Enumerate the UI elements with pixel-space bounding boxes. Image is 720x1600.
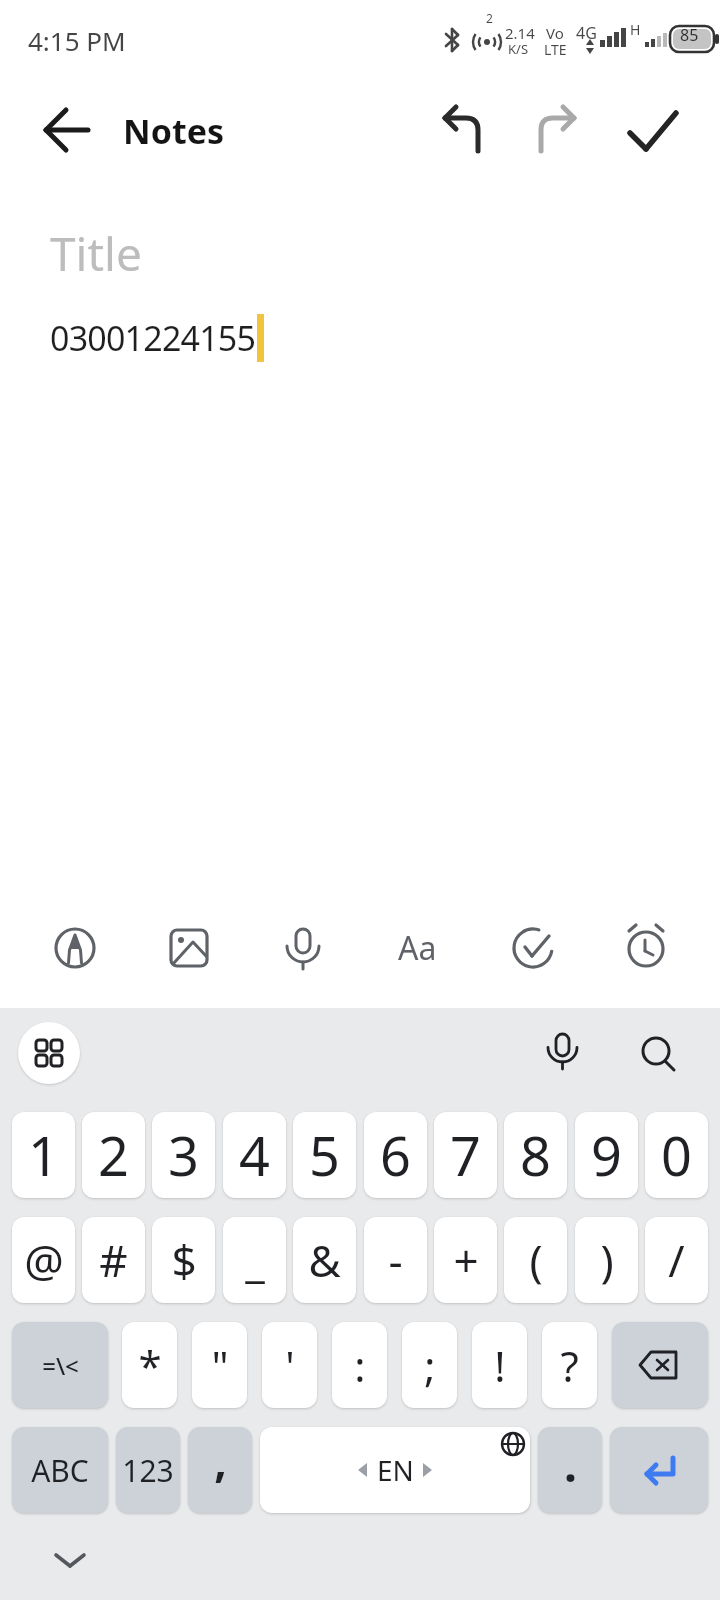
button[interactable]: # — [82, 1217, 145, 1303]
staticText: * — [138, 1337, 162, 1394]
button[interactable] — [612, 1322, 708, 1408]
staticText: EN — [377, 1451, 414, 1489]
staticText: 1 — [28, 1118, 59, 1192]
button[interactable] — [169, 928, 209, 968]
button[interactable]: * — [122, 1322, 177, 1408]
button[interactable]: 2 — [82, 1112, 145, 1198]
staticText: , — [214, 1430, 227, 1490]
button[interactable] — [52, 1548, 88, 1574]
staticText: + — [453, 1230, 479, 1290]
button[interactable]: 4 — [223, 1112, 286, 1198]
button[interactable]: 123 — [116, 1427, 180, 1513]
button[interactable] — [511, 926, 555, 970]
staticText: - — [388, 1230, 403, 1290]
button[interactable]: 5 — [293, 1112, 356, 1198]
staticText: 3 — [168, 1118, 199, 1192]
button[interactable]: ' — [262, 1322, 317, 1408]
button[interactable]: 0 — [645, 1112, 708, 1198]
button[interactable]: EN — [260, 1427, 530, 1513]
staticText: _ — [245, 1230, 265, 1290]
button[interactable]: & — [293, 1217, 356, 1303]
button[interactable]: 9 — [575, 1112, 638, 1198]
button[interactable] — [283, 926, 323, 972]
button[interactable] — [610, 1427, 708, 1513]
button[interactable] — [533, 103, 581, 155]
button[interactable]: - — [364, 1217, 427, 1303]
staticText: K/S — [508, 40, 529, 58]
staticText: 0 — [661, 1118, 692, 1192]
button[interactable] — [544, 1032, 582, 1076]
button[interactable]: Aa — [392, 926, 442, 970]
button[interactable]: / — [645, 1217, 708, 1303]
button[interactable] — [438, 103, 486, 155]
staticText: ( — [529, 1230, 543, 1290]
staticText: & — [308, 1230, 341, 1290]
button[interactable] — [53, 926, 97, 970]
button[interactable] — [626, 108, 680, 154]
staticText: 2 — [486, 10, 493, 26]
button[interactable]: 3 — [152, 1112, 215, 1198]
button[interactable] — [18, 1022, 80, 1084]
staticText: Aa — [398, 926, 437, 970]
staticText: ABC — [31, 1450, 89, 1491]
staticText: =\< — [42, 1349, 79, 1382]
staticText: 2.14 — [505, 23, 535, 43]
staticText: 5 — [309, 1118, 340, 1192]
staticText: ) — [600, 1230, 614, 1290]
staticText: ' — [285, 1337, 295, 1394]
button[interactable]: @ — [12, 1217, 75, 1303]
button[interactable]: : — [332, 1322, 387, 1408]
button[interactable]: ; — [402, 1322, 457, 1408]
button[interactable]: $ — [152, 1217, 215, 1303]
staticText: 8 — [520, 1118, 551, 1192]
staticText: ? — [560, 1337, 579, 1394]
staticText: H — [630, 20, 641, 39]
button[interactable]: , — [188, 1427, 252, 1513]
button[interactable]: 6 — [364, 1112, 427, 1198]
staticText: 4 — [239, 1118, 270, 1192]
staticText: 85 — [680, 24, 699, 46]
button[interactable]: 7 — [434, 1112, 497, 1198]
button[interactable]: ABC — [12, 1427, 108, 1513]
staticText: 9 — [591, 1118, 622, 1192]
button[interactable]: . — [538, 1427, 602, 1513]
staticText: " — [211, 1337, 229, 1394]
staticText: 2 — [98, 1118, 129, 1192]
staticText: 6 — [380, 1118, 411, 1192]
button[interactable] — [40, 106, 92, 154]
button[interactable]: 1 — [12, 1112, 75, 1198]
button[interactable]: " — [192, 1322, 247, 1408]
staticText: Notes — [123, 108, 225, 154]
button[interactable]: _ — [223, 1217, 286, 1303]
staticText: : — [354, 1337, 366, 1394]
button[interactable]: ! — [472, 1322, 527, 1408]
staticText: 123 — [122, 1450, 174, 1491]
button[interactable]: ? — [542, 1322, 597, 1408]
button[interactable]: =\< — [12, 1322, 108, 1408]
staticText: 03001224155 — [50, 315, 256, 361]
staticText: 4G — [576, 22, 597, 44]
staticText: LTE — [544, 40, 567, 59]
button[interactable]: ) — [575, 1217, 638, 1303]
staticText: 7 — [450, 1118, 481, 1192]
staticText: Title — [50, 222, 142, 285]
button[interactable]: + — [434, 1217, 497, 1303]
staticText: 4:15 PM — [28, 23, 126, 58]
staticText: ! — [494, 1337, 506, 1394]
staticText: $ — [171, 1230, 197, 1290]
staticText: Vo — [546, 23, 564, 43]
staticText: @ — [24, 1230, 64, 1290]
staticText: # — [99, 1230, 128, 1290]
staticText: . — [564, 1433, 577, 1496]
button[interactable] — [624, 920, 670, 970]
staticText: ; — [424, 1337, 436, 1394]
button[interactable] — [638, 1034, 682, 1078]
staticText: / — [668, 1230, 685, 1290]
button[interactable]: ( — [504, 1217, 567, 1303]
button[interactable]: 8 — [504, 1112, 567, 1198]
